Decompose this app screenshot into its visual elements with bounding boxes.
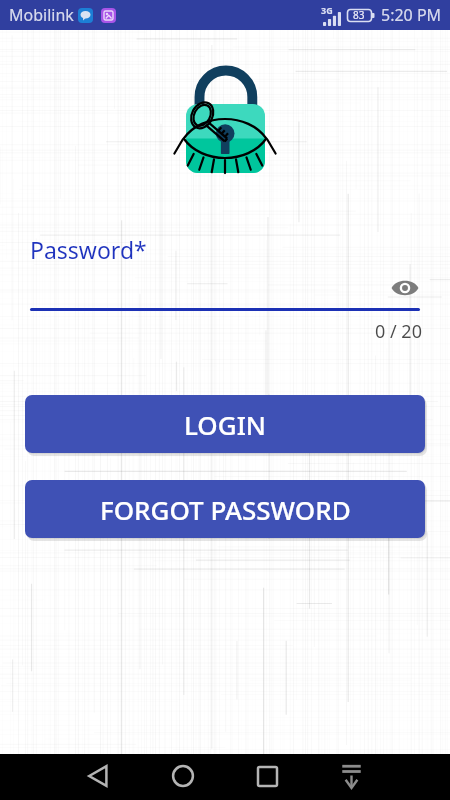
staticText: LOGIN [184,407,267,442]
button[interactable]: Home [162,755,204,797]
button[interactable]: Hide keyboard [330,755,372,797]
button[interactable]: Show password [390,277,420,298]
staticText: 0 / 20 [375,319,422,344]
staticText: Mobilink [9,4,74,26]
button[interactable]: Back [77,755,119,797]
staticText: 3G [321,4,333,16]
button[interactable]: FORGOT PASSWORD [25,480,425,538]
button[interactable]: Recent apps [246,755,288,797]
staticText: FORGOT PASSWORD [100,492,351,527]
staticText: 5:20 PM [381,4,442,26]
staticText: Password* [30,234,147,265]
staticText: 83 [353,8,365,22]
button[interactable]: LOGIN [25,395,425,453]
